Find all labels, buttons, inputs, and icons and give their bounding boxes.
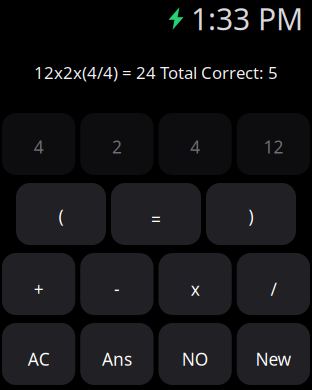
button[interactable]: ( bbox=[16, 183, 106, 245]
staticText: 4 bbox=[34, 135, 44, 159]
staticText: 12x2x(4/4) = 24 Total Correct: 5 bbox=[34, 61, 278, 84]
staticText: / bbox=[270, 277, 276, 301]
staticText: New bbox=[255, 347, 291, 371]
button[interactable]: 4 bbox=[2, 113, 75, 175]
staticText: 2 bbox=[112, 135, 122, 159]
staticText: Ans bbox=[102, 347, 132, 371]
staticText: 4 bbox=[190, 135, 200, 159]
button[interactable]: ) bbox=[206, 183, 296, 245]
button[interactable]: / bbox=[237, 253, 310, 315]
staticText: ( bbox=[58, 204, 63, 228]
staticText: 1:33 PM bbox=[191, 0, 303, 39]
staticText: = bbox=[151, 207, 161, 231]
staticText: AC bbox=[28, 347, 50, 371]
button[interactable]: = bbox=[111, 183, 201, 245]
button[interactable]: - bbox=[80, 253, 153, 315]
staticText: x bbox=[191, 277, 200, 301]
button[interactable]: 4 bbox=[158, 113, 232, 175]
button[interactable]: AC bbox=[2, 323, 75, 385]
button[interactable]: 12 bbox=[237, 113, 310, 175]
button[interactable]: + bbox=[2, 253, 75, 315]
button[interactable]: 2 bbox=[80, 113, 153, 175]
button[interactable]: New bbox=[237, 323, 310, 385]
button[interactable]: NO bbox=[158, 323, 232, 385]
button[interactable]: x bbox=[158, 253, 232, 315]
staticText: + bbox=[34, 277, 44, 301]
staticText: NO bbox=[182, 347, 209, 371]
staticText: 12 bbox=[263, 135, 283, 159]
staticText: - bbox=[114, 277, 120, 301]
staticText: ) bbox=[248, 204, 253, 228]
button[interactable]: Ans bbox=[80, 323, 153, 385]
